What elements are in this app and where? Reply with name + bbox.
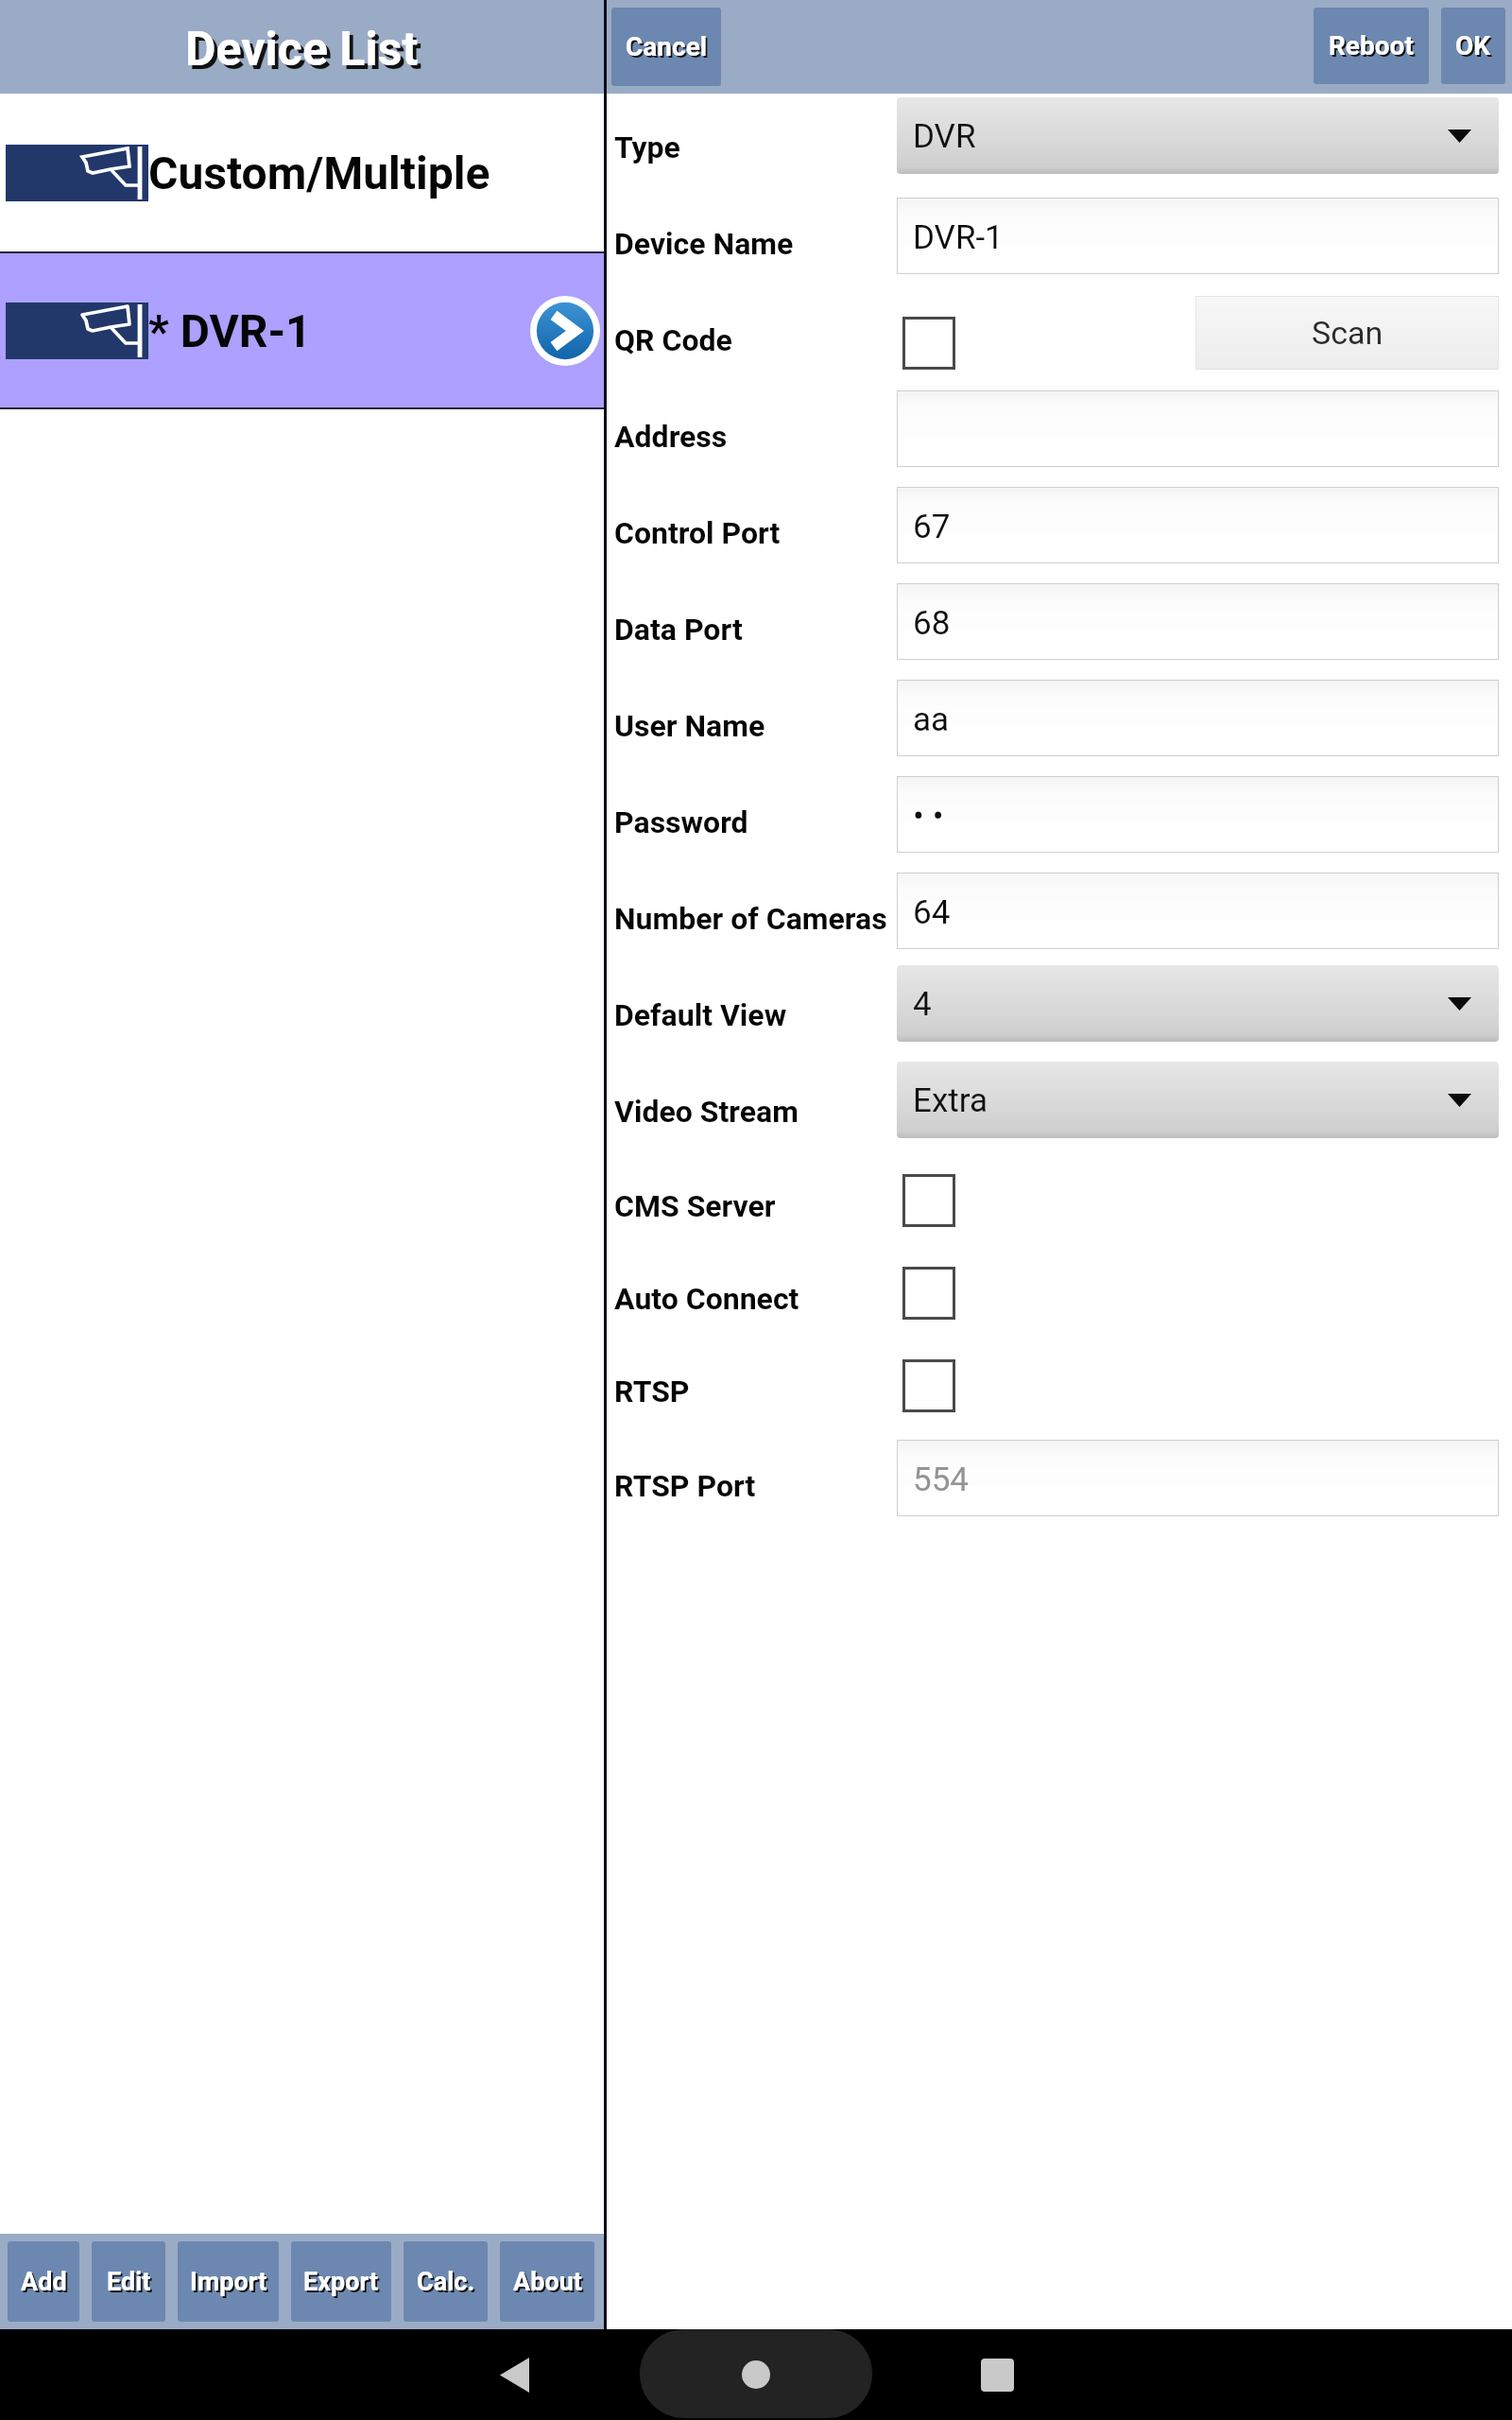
button[interactable]: About (500, 2241, 594, 2322)
button[interactable]: Add (8, 2241, 79, 2322)
staticText: DVR (913, 117, 976, 156)
button[interactable]: 64 (897, 873, 1499, 949)
button[interactable]: OK (1441, 8, 1505, 84)
staticText: Export (303, 2267, 379, 2297)
button[interactable]: RTSP checkbox (902, 1359, 955, 1412)
button[interactable]: 67 (897, 487, 1499, 563)
staticText: 4 (913, 985, 932, 1024)
staticText: CMS Server (614, 1188, 776, 1224)
button[interactable]: Calc. (404, 2241, 488, 2322)
staticText: 64 (913, 893, 951, 932)
staticText: Add (21, 2267, 67, 2297)
staticText: RTSP Port (614, 1468, 756, 1504)
staticText: 68 (913, 604, 951, 643)
button[interactable]: Cancel (611, 8, 721, 86)
button[interactable]: 4 (897, 965, 1499, 1042)
button[interactable]: aa (897, 680, 1499, 756)
staticText: Auto Connect (614, 1281, 799, 1317)
button[interactable]: Recent apps (974, 2352, 1020, 2397)
button[interactable]: Extra (897, 1062, 1499, 1138)
staticText: Video Stream (614, 1094, 799, 1130)
staticText: Add (23, 2269, 69, 2299)
staticText: Reboot (1329, 30, 1414, 61)
button[interactable]: Auto Connect checkbox (902, 1267, 955, 1320)
button[interactable]: Home (733, 2352, 779, 2397)
staticText: RTSP (614, 1374, 690, 1409)
staticText: User Name (614, 708, 765, 744)
staticText: Control Port (614, 515, 781, 551)
button[interactable]: Scan (1195, 296, 1499, 370)
staticText: Default View (614, 997, 787, 1033)
button[interactable]: 554 (897, 1440, 1499, 1516)
staticText: Calc. (419, 2269, 477, 2299)
button[interactable]: QR Code checkbox (902, 317, 955, 370)
staticText: Reboot (1331, 32, 1416, 63)
staticText: Extra (913, 1081, 988, 1120)
button[interactable]: DVR (897, 97, 1499, 174)
button[interactable]: DVR-1 (897, 198, 1499, 274)
staticText: Cancel (627, 33, 710, 64)
staticText: • • (913, 797, 944, 836)
staticText: Password (614, 804, 748, 840)
button[interactable]: * DVR-1 (0, 253, 604, 407)
button[interactable]: 68 (897, 583, 1499, 660)
staticText: Device List (189, 26, 422, 81)
button[interactable]: Reboot (1314, 8, 1429, 84)
staticText: DVR-1 (913, 218, 1004, 257)
staticText: Number of Cameras (614, 901, 887, 937)
staticText: Scan (1312, 314, 1383, 352)
button[interactable]: Edit (92, 2241, 165, 2322)
staticText: Custom/Multiple (148, 147, 490, 199)
staticText: Type (614, 130, 680, 165)
staticText: Device List (185, 22, 419, 78)
button[interactable]: Export (291, 2241, 391, 2322)
staticText: OK (1457, 32, 1493, 63)
staticText: Edit (107, 2267, 151, 2297)
staticText: Cancel (626, 31, 708, 62)
staticText: Calc. (417, 2267, 475, 2297)
staticText: QR Code (614, 322, 732, 358)
staticText: Device Name (614, 226, 794, 262)
button[interactable]: Back (491, 2352, 537, 2397)
staticText: Edit (109, 2269, 153, 2299)
staticText: About (513, 2267, 582, 2297)
button[interactable]: Import (178, 2241, 279, 2322)
staticText: Import (190, 2267, 267, 2297)
button[interactable]: CMS Server checkbox (902, 1174, 955, 1227)
button[interactable] (897, 390, 1499, 467)
staticText: Data Port (614, 612, 743, 648)
staticText: 67 (913, 508, 951, 546)
staticText: 554 (913, 1461, 970, 1499)
staticText: aa (913, 700, 950, 739)
button[interactable]: • • (897, 776, 1499, 853)
button[interactable]: Open device settings (528, 294, 602, 368)
staticText: About (515, 2269, 584, 2299)
staticText: Import (192, 2269, 269, 2299)
staticText: Address (614, 419, 728, 455)
staticText: OK (1455, 30, 1491, 61)
staticText: Export (305, 2269, 381, 2299)
button[interactable]: Custom/Multiple (0, 94, 604, 251)
staticText: * DVR-1 (148, 304, 312, 357)
